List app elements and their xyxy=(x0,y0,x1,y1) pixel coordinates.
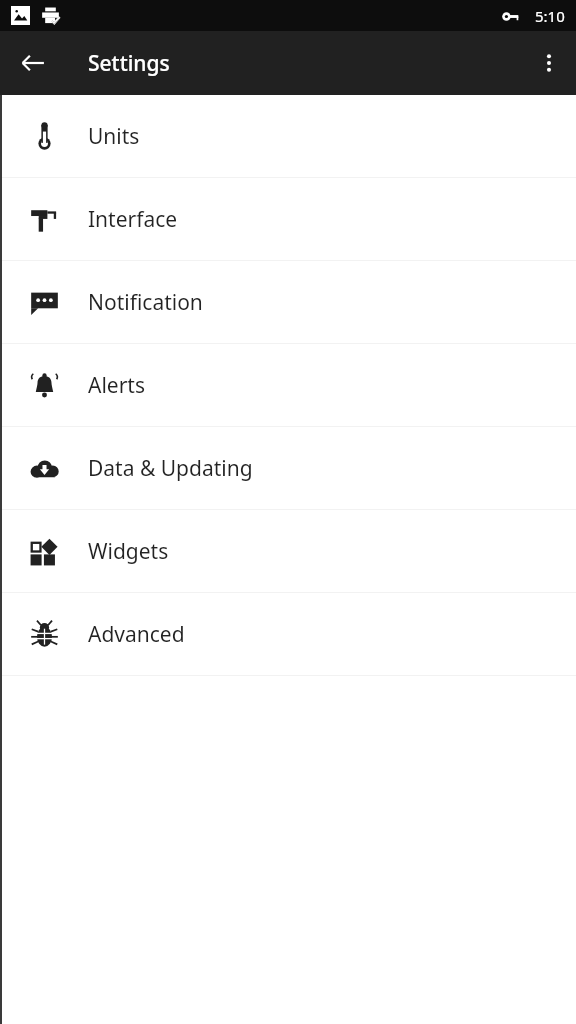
button[interactable]: More options xyxy=(525,39,573,87)
staticText: Advanced xyxy=(88,620,185,649)
button[interactable]: Alerts xyxy=(0,344,576,426)
staticText: Units xyxy=(88,122,140,151)
button[interactable]: Units xyxy=(0,95,576,177)
button[interactable]: Widgets xyxy=(0,510,576,592)
staticText: Widgets xyxy=(88,537,169,566)
button[interactable]: Back xyxy=(9,39,57,87)
staticText: Alerts xyxy=(88,371,145,400)
staticText: Interface xyxy=(88,205,178,234)
button[interactable]: Data & Updating xyxy=(0,427,576,509)
staticText: Data & Updating xyxy=(88,454,253,483)
staticText: Notification xyxy=(88,288,203,317)
button[interactable]: Notification xyxy=(0,261,576,343)
button[interactable]: Advanced xyxy=(0,593,576,675)
staticText: 5:10 xyxy=(535,6,565,26)
button[interactable]: Interface xyxy=(0,178,576,260)
staticText: Settings xyxy=(88,49,170,78)
